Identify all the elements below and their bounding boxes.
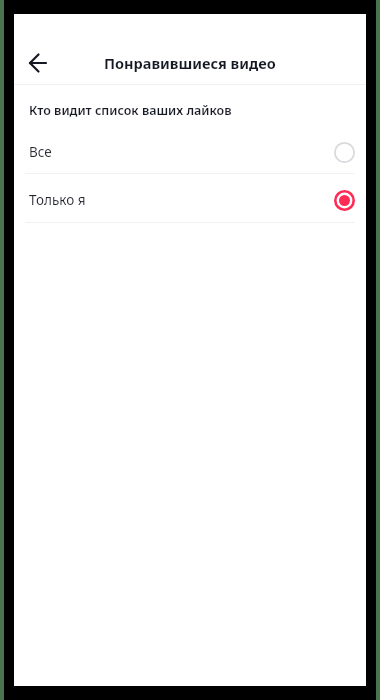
staticText: Все bbox=[29, 143, 52, 161]
staticText: Только я bbox=[29, 191, 86, 209]
staticText: Кто видит список ваших лайков bbox=[29, 102, 232, 119]
button[interactable]: Только я bbox=[14, 178, 366, 222]
button[interactable] bbox=[20, 45, 56, 81]
staticText: Понравившиеся видео bbox=[104, 53, 276, 73]
button[interactable]: Все bbox=[14, 130, 366, 174]
